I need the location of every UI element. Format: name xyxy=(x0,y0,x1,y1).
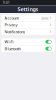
staticText: Wi-Fi xyxy=(4,39,13,44)
staticText: 9:41 xyxy=(3,1,10,4)
staticText: Privacy xyxy=(4,22,17,27)
button[interactable]: Account xyxy=(1,15,55,21)
button[interactable]: Notifications xyxy=(1,28,55,35)
staticText: Account xyxy=(4,15,18,20)
staticText: Bluetooth xyxy=(4,46,20,51)
button[interactable]: Bluetooth xyxy=(45,47,52,50)
staticText: Settings xyxy=(17,6,38,13)
staticText: Jane xyxy=(42,15,49,20)
button[interactable]: Privacy xyxy=(1,21,55,28)
button[interactable]: Wi-Fi xyxy=(45,40,52,44)
staticText: Notifications xyxy=(4,29,25,34)
